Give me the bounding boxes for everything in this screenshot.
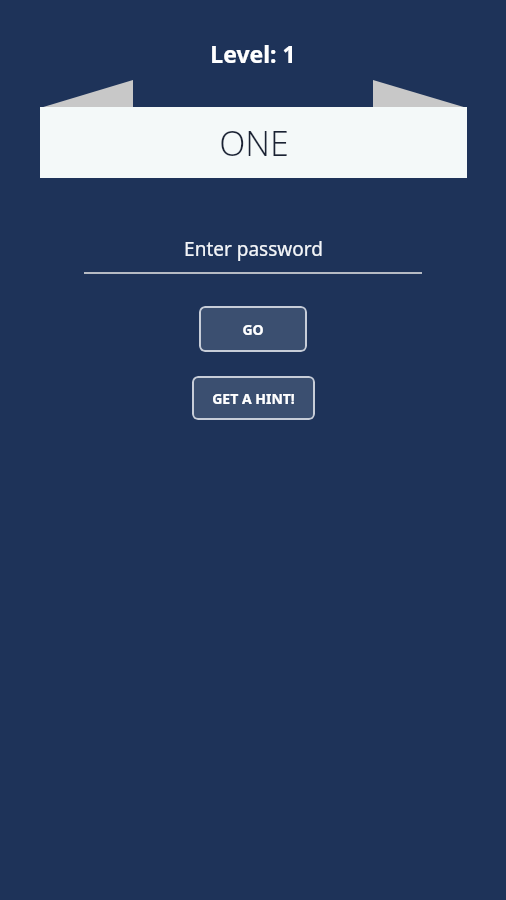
staticText: GET A HINT! bbox=[212, 389, 295, 408]
button[interactable]: GO bbox=[199, 306, 307, 352]
staticText: Level: 1 bbox=[0, 38, 506, 900]
staticText: GO bbox=[242, 320, 264, 339]
button[interactable]: GET A HINT! bbox=[192, 376, 315, 420]
staticText: Enter password bbox=[184, 236, 323, 262]
button[interactable]: Enter password bbox=[84, 236, 422, 274]
staticText: ONE bbox=[219, 120, 289, 166]
